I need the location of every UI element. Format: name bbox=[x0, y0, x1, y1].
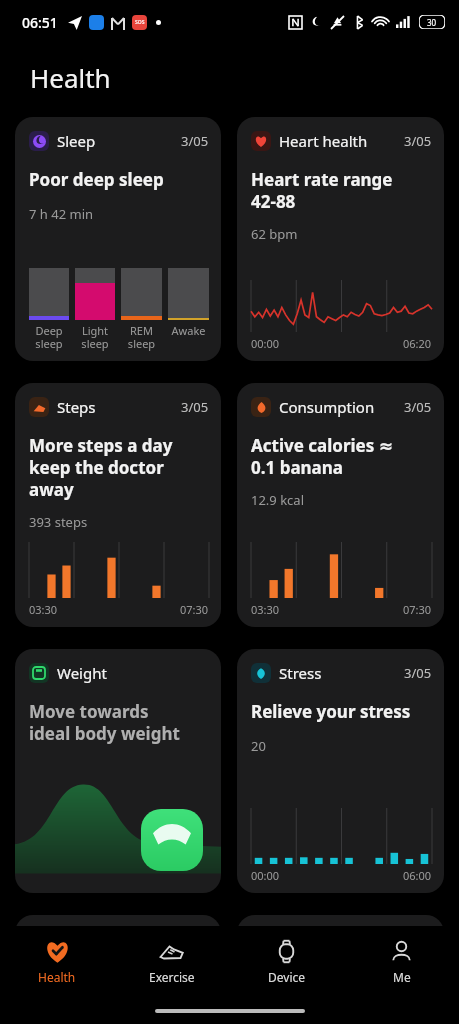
staticText: Health bbox=[38, 969, 76, 985]
button[interactable]: Weight bbox=[15, 649, 221, 893]
staticText: Light sleep bbox=[75, 323, 115, 351]
staticText: 393 steps bbox=[29, 513, 88, 531]
button[interactable] bbox=[15, 915, 221, 975]
staticText: 3/05 bbox=[404, 398, 432, 416]
button[interactable]: Health bbox=[0, 926, 114, 998]
button[interactable]: Me bbox=[344, 926, 459, 998]
staticText: 12.9 kcal bbox=[251, 491, 305, 509]
button[interactable]: Sleep bbox=[15, 117, 221, 361]
staticText: Me bbox=[393, 969, 411, 985]
staticText: 30 bbox=[427, 17, 437, 28]
staticText: 07:30 bbox=[180, 602, 209, 617]
staticText: More steps a day keep the doctor away bbox=[29, 434, 209, 501]
button[interactable]: Stress bbox=[237, 649, 444, 893]
staticText: SOS bbox=[135, 19, 145, 26]
staticText: Weight bbox=[57, 663, 107, 683]
staticText: Relieve your stress bbox=[251, 700, 411, 723]
button[interactable] bbox=[237, 915, 444, 975]
staticText: Exercise bbox=[149, 969, 195, 985]
staticText: 03:30 bbox=[29, 602, 58, 617]
staticText: Move towards ideal body weight bbox=[29, 700, 180, 745]
staticText: 03:30 bbox=[251, 602, 280, 617]
staticText: REM sleep bbox=[121, 323, 162, 351]
staticText: Deep sleep bbox=[29, 323, 69, 351]
staticText: Active calories ≈ 0.1 banana bbox=[251, 434, 393, 479]
staticText: Heart health bbox=[279, 131, 368, 151]
staticText: 62 bpm bbox=[251, 225, 298, 243]
staticText: 00:00 bbox=[251, 868, 280, 883]
staticText: 00:00 bbox=[251, 336, 280, 351]
staticText: 07:30 bbox=[403, 602, 432, 617]
staticText: 3/05 bbox=[404, 132, 432, 150]
staticText: 3/05 bbox=[404, 664, 432, 682]
staticText: Steps bbox=[57, 397, 96, 417]
button[interactable]: Heart health bbox=[237, 117, 444, 361]
staticText: 06:51 bbox=[22, 13, 58, 32]
staticText: Heart rate range 42-88 bbox=[251, 168, 393, 213]
staticText: Poor deep sleep bbox=[29, 168, 164, 191]
staticText: 3/05 bbox=[181, 132, 209, 150]
staticText: 06:00 bbox=[403, 868, 432, 883]
staticText: Stress bbox=[279, 663, 322, 683]
staticText: 20 bbox=[251, 737, 266, 755]
staticText: Health bbox=[30, 60, 111, 95]
button[interactable]: Device bbox=[229, 926, 344, 998]
staticText: Awake bbox=[168, 323, 209, 338]
staticText: Sleep bbox=[57, 131, 96, 151]
staticText: 7 h 42 min bbox=[29, 205, 94, 223]
staticText: 3/05 bbox=[181, 398, 209, 416]
button[interactable]: Consumption bbox=[237, 383, 444, 627]
button[interactable]: Exercise bbox=[114, 926, 229, 998]
staticText: Consumption bbox=[279, 397, 375, 417]
staticText: Device bbox=[268, 969, 306, 985]
staticText: 06:20 bbox=[403, 336, 432, 351]
button[interactable]: Steps bbox=[15, 383, 221, 627]
